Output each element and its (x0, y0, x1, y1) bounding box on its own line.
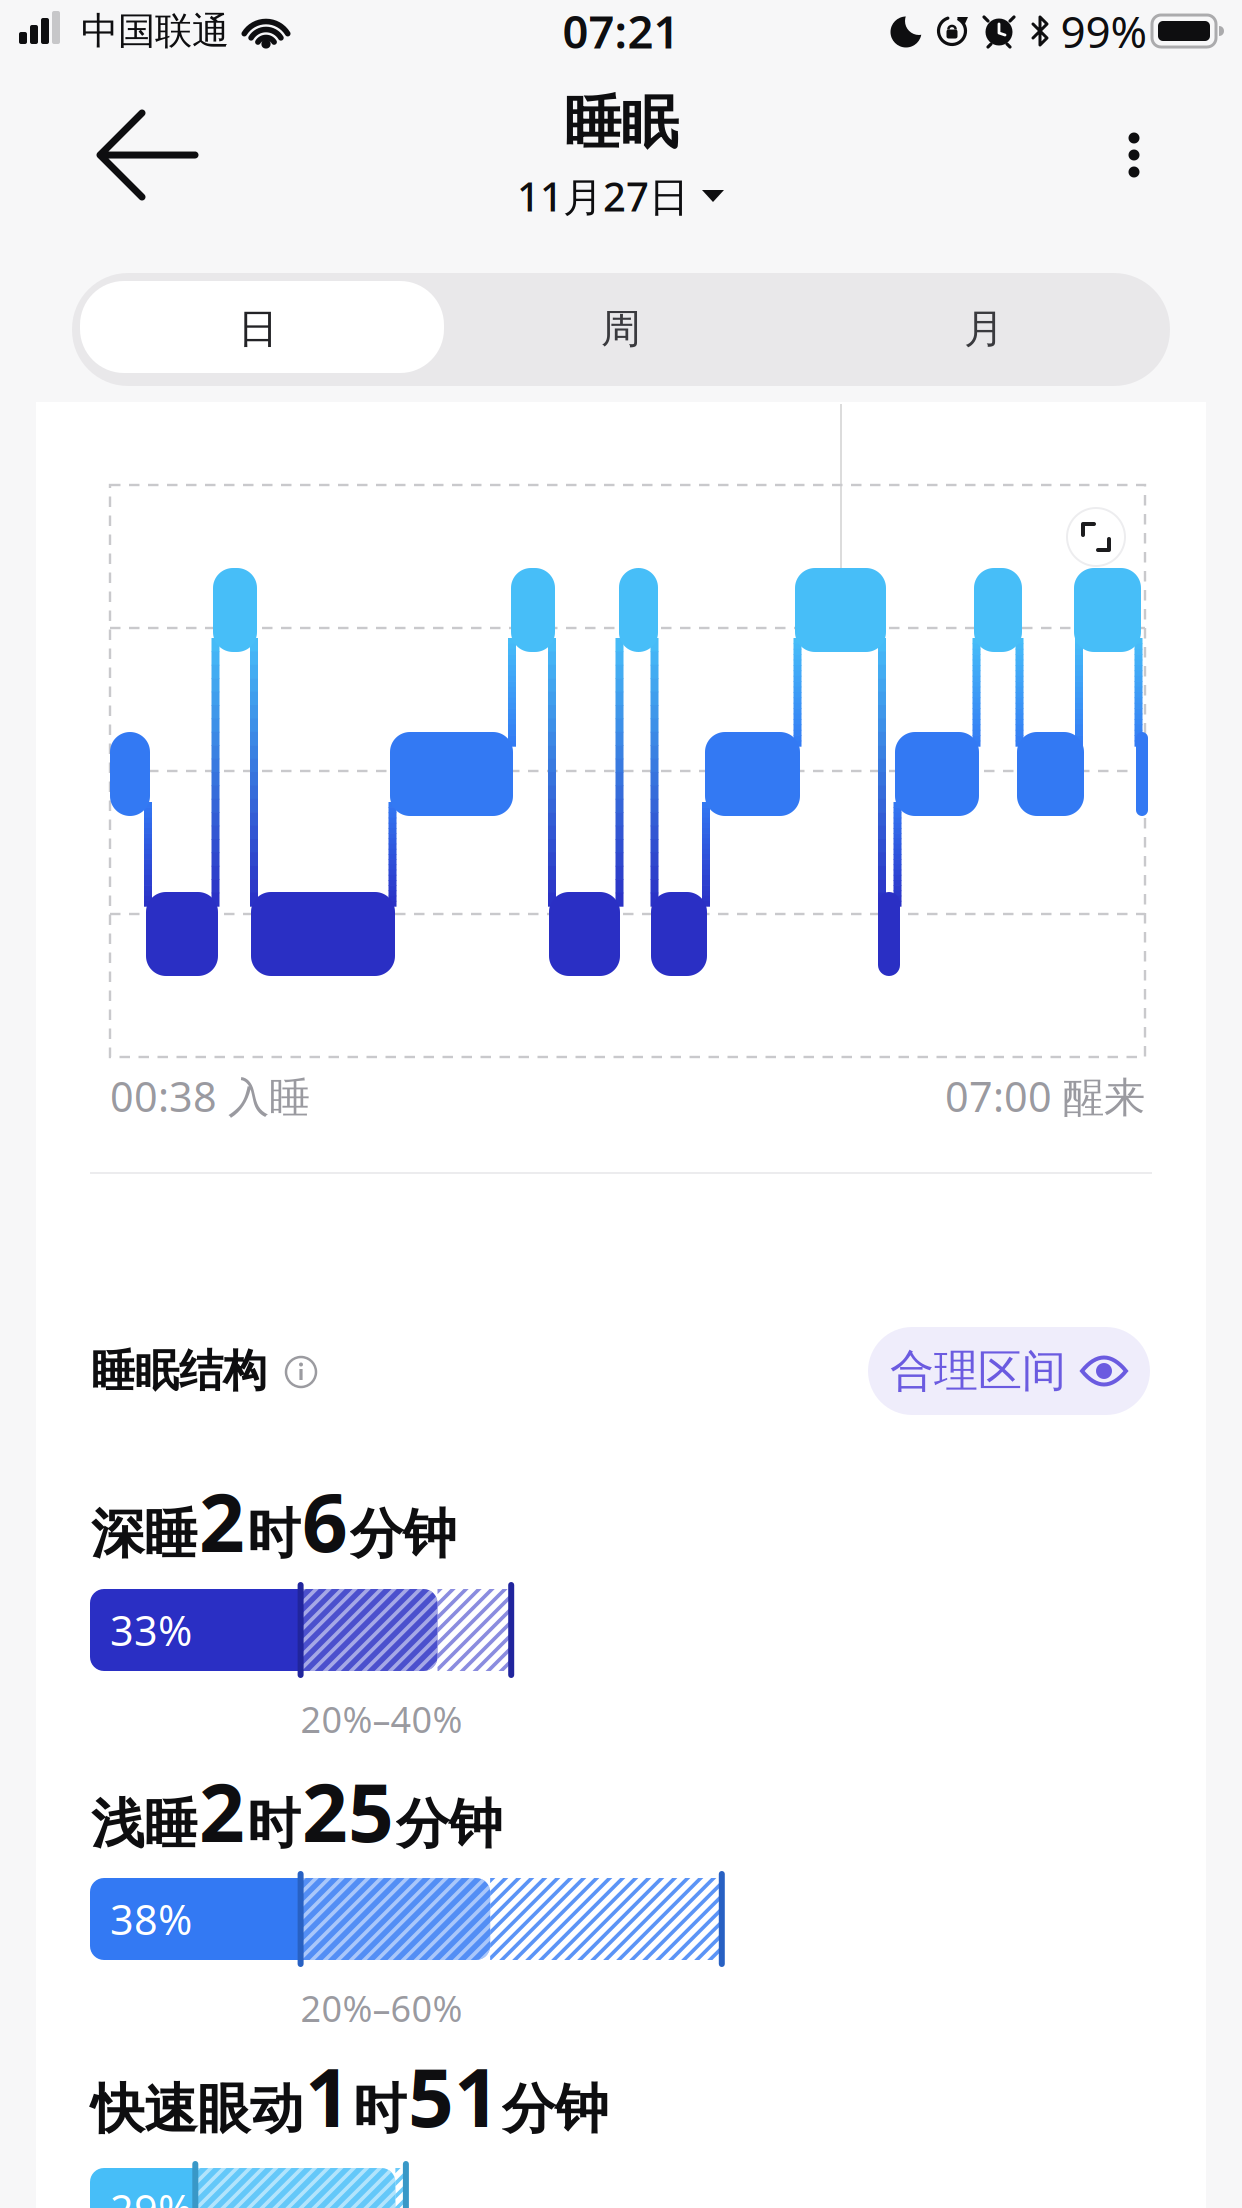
staticText: 20%–60% (301, 1984, 463, 2032)
button[interactable]: Back (93, 105, 213, 205)
staticText: 睡眠 (564, 88, 678, 158)
staticText: 浅睡 (91, 1791, 197, 1857)
staticText: 2 (199, 1758, 245, 1864)
staticText: 2 (199, 1468, 245, 1574)
staticText: 分钟 (350, 1501, 456, 1567)
staticText: 6 (302, 1468, 348, 1574)
staticText: 时 (247, 1791, 300, 1857)
staticText: 睡眠结构 (91, 1344, 267, 1398)
staticText: 51 (408, 2043, 500, 2149)
staticText: 周 (601, 304, 641, 353)
button[interactable]: 周 (438, 272, 804, 385)
staticText: 日 (238, 304, 278, 353)
button[interactable]: Expand chart (1066, 507, 1126, 567)
button[interactable]: 日 (75, 272, 441, 385)
staticText: 月 (964, 304, 1004, 353)
button[interactable]: 合理区间 (868, 1327, 1150, 1415)
staticText: 时 (353, 2076, 406, 2142)
staticText: 07:21 (562, 1, 679, 61)
staticText: 07:00 醒来 (945, 1069, 1145, 1123)
staticText: 1 (305, 2043, 351, 2149)
staticText: 00:38 入睡 (110, 1069, 310, 1123)
staticText: 分钟 (502, 2076, 608, 2142)
staticText: 中国联通 (81, 8, 229, 54)
staticText: 合理区间 (890, 1344, 1066, 1398)
staticText: 29% (110, 2182, 192, 2208)
staticText: 深睡 (91, 1501, 197, 1567)
button[interactable]: 11月27日 (517, 169, 725, 222)
button[interactable]: Info (283, 1354, 319, 1390)
staticText: 分钟 (396, 1791, 502, 1857)
staticText: 25 (302, 1758, 394, 1864)
staticText: 20%–40% (301, 1695, 463, 1743)
button[interactable]: 月 (801, 272, 1167, 385)
staticText: 快速眼动 (91, 2076, 303, 2142)
button[interactable]: More (1110, 115, 1158, 195)
staticText: 33% (110, 1603, 192, 1657)
staticText: 11月27日 (517, 169, 689, 222)
staticText: 38% (110, 1892, 192, 1946)
staticText: 时 (247, 1501, 300, 1567)
staticText: 99% (1060, 2, 1147, 60)
